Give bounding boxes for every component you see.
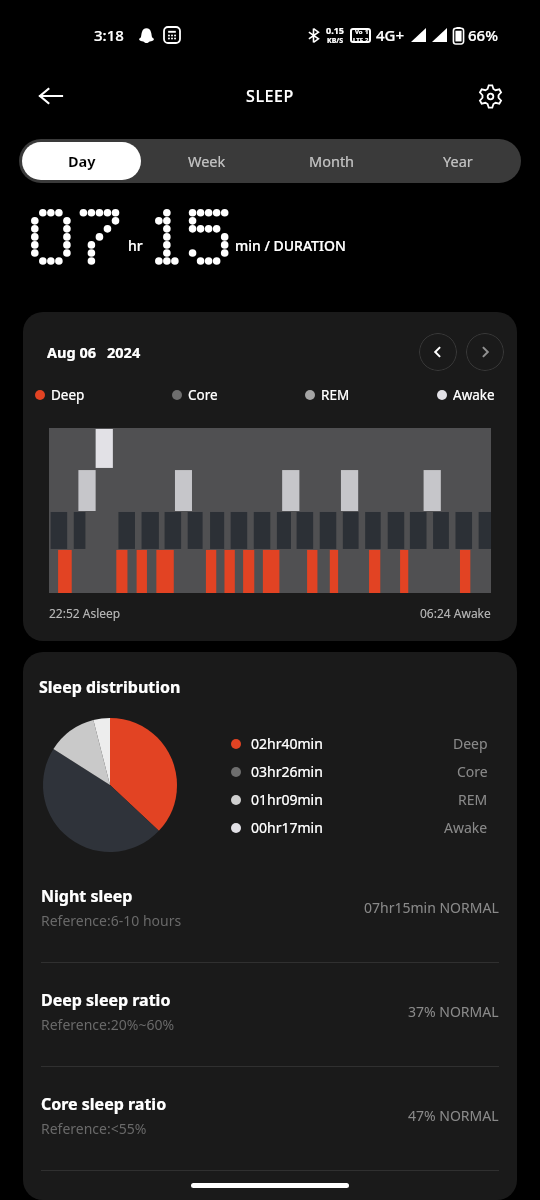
button[interactable]: Back xyxy=(29,74,73,118)
staticText: Reference:<55% xyxy=(41,1119,147,1138)
staticText: Awake xyxy=(444,818,488,837)
staticText: Awake xyxy=(453,386,495,404)
staticText: 06:24 Awake xyxy=(420,605,491,621)
staticText: Deep xyxy=(453,734,488,753)
staticText: LTE xyxy=(353,36,364,43)
staticText: 00hr17min xyxy=(251,818,323,837)
staticText: Deep sleep ratio xyxy=(41,989,171,1011)
staticText: 1 xyxy=(365,28,369,36)
staticText: Night sleep xyxy=(41,885,133,907)
button[interactable]: Next day xyxy=(466,333,504,371)
button[interactable]: Year xyxy=(398,142,518,180)
staticText: Core xyxy=(188,386,218,404)
staticText: Day xyxy=(68,151,96,171)
staticText: Core xyxy=(457,762,488,781)
staticText: Reference:6-10 hours xyxy=(41,911,182,930)
button[interactable]: Week xyxy=(147,142,266,180)
staticText: REM xyxy=(321,386,350,404)
staticText: min / DURATION xyxy=(235,236,346,255)
staticText: 47% NORMAL xyxy=(408,1106,499,1125)
staticText: 07hr15min NORMAL xyxy=(364,898,499,917)
staticText: 02hr40min xyxy=(251,734,323,753)
button[interactable]: Day xyxy=(22,142,141,180)
staticText: 0.15 xyxy=(326,24,344,36)
staticText: 03hr26min xyxy=(251,762,323,781)
staticText: REM xyxy=(458,790,488,809)
staticText: hr xyxy=(128,236,143,255)
staticText: Month xyxy=(309,151,355,171)
button[interactable]: Settings xyxy=(468,74,512,118)
staticText: 01hr09min xyxy=(251,790,323,809)
staticText: Year xyxy=(443,151,473,171)
staticText: 2 xyxy=(365,36,369,43)
staticText: Deep xyxy=(51,386,85,404)
staticText: KB/S xyxy=(327,36,344,46)
staticText: 66% xyxy=(468,25,498,45)
staticText: 4G+ xyxy=(376,25,405,45)
staticText: SLEEP xyxy=(246,85,294,107)
button[interactable]: Month xyxy=(272,142,392,180)
staticText: Week xyxy=(188,151,226,171)
staticText: Sleep distribution xyxy=(39,676,181,698)
button[interactable]: Previous day xyxy=(419,333,457,371)
staticText: 22:52 Asleep xyxy=(49,605,121,621)
staticText: Aug 06 xyxy=(47,342,96,362)
staticText: 2024 xyxy=(107,342,141,362)
staticText: 3:18 xyxy=(94,25,124,45)
staticText: Reference:20%~60% xyxy=(41,1015,175,1034)
staticText: 37% NORMAL xyxy=(408,1002,499,1021)
staticText: Core sleep ratio xyxy=(41,1093,167,1115)
staticText: Vo xyxy=(355,28,363,36)
